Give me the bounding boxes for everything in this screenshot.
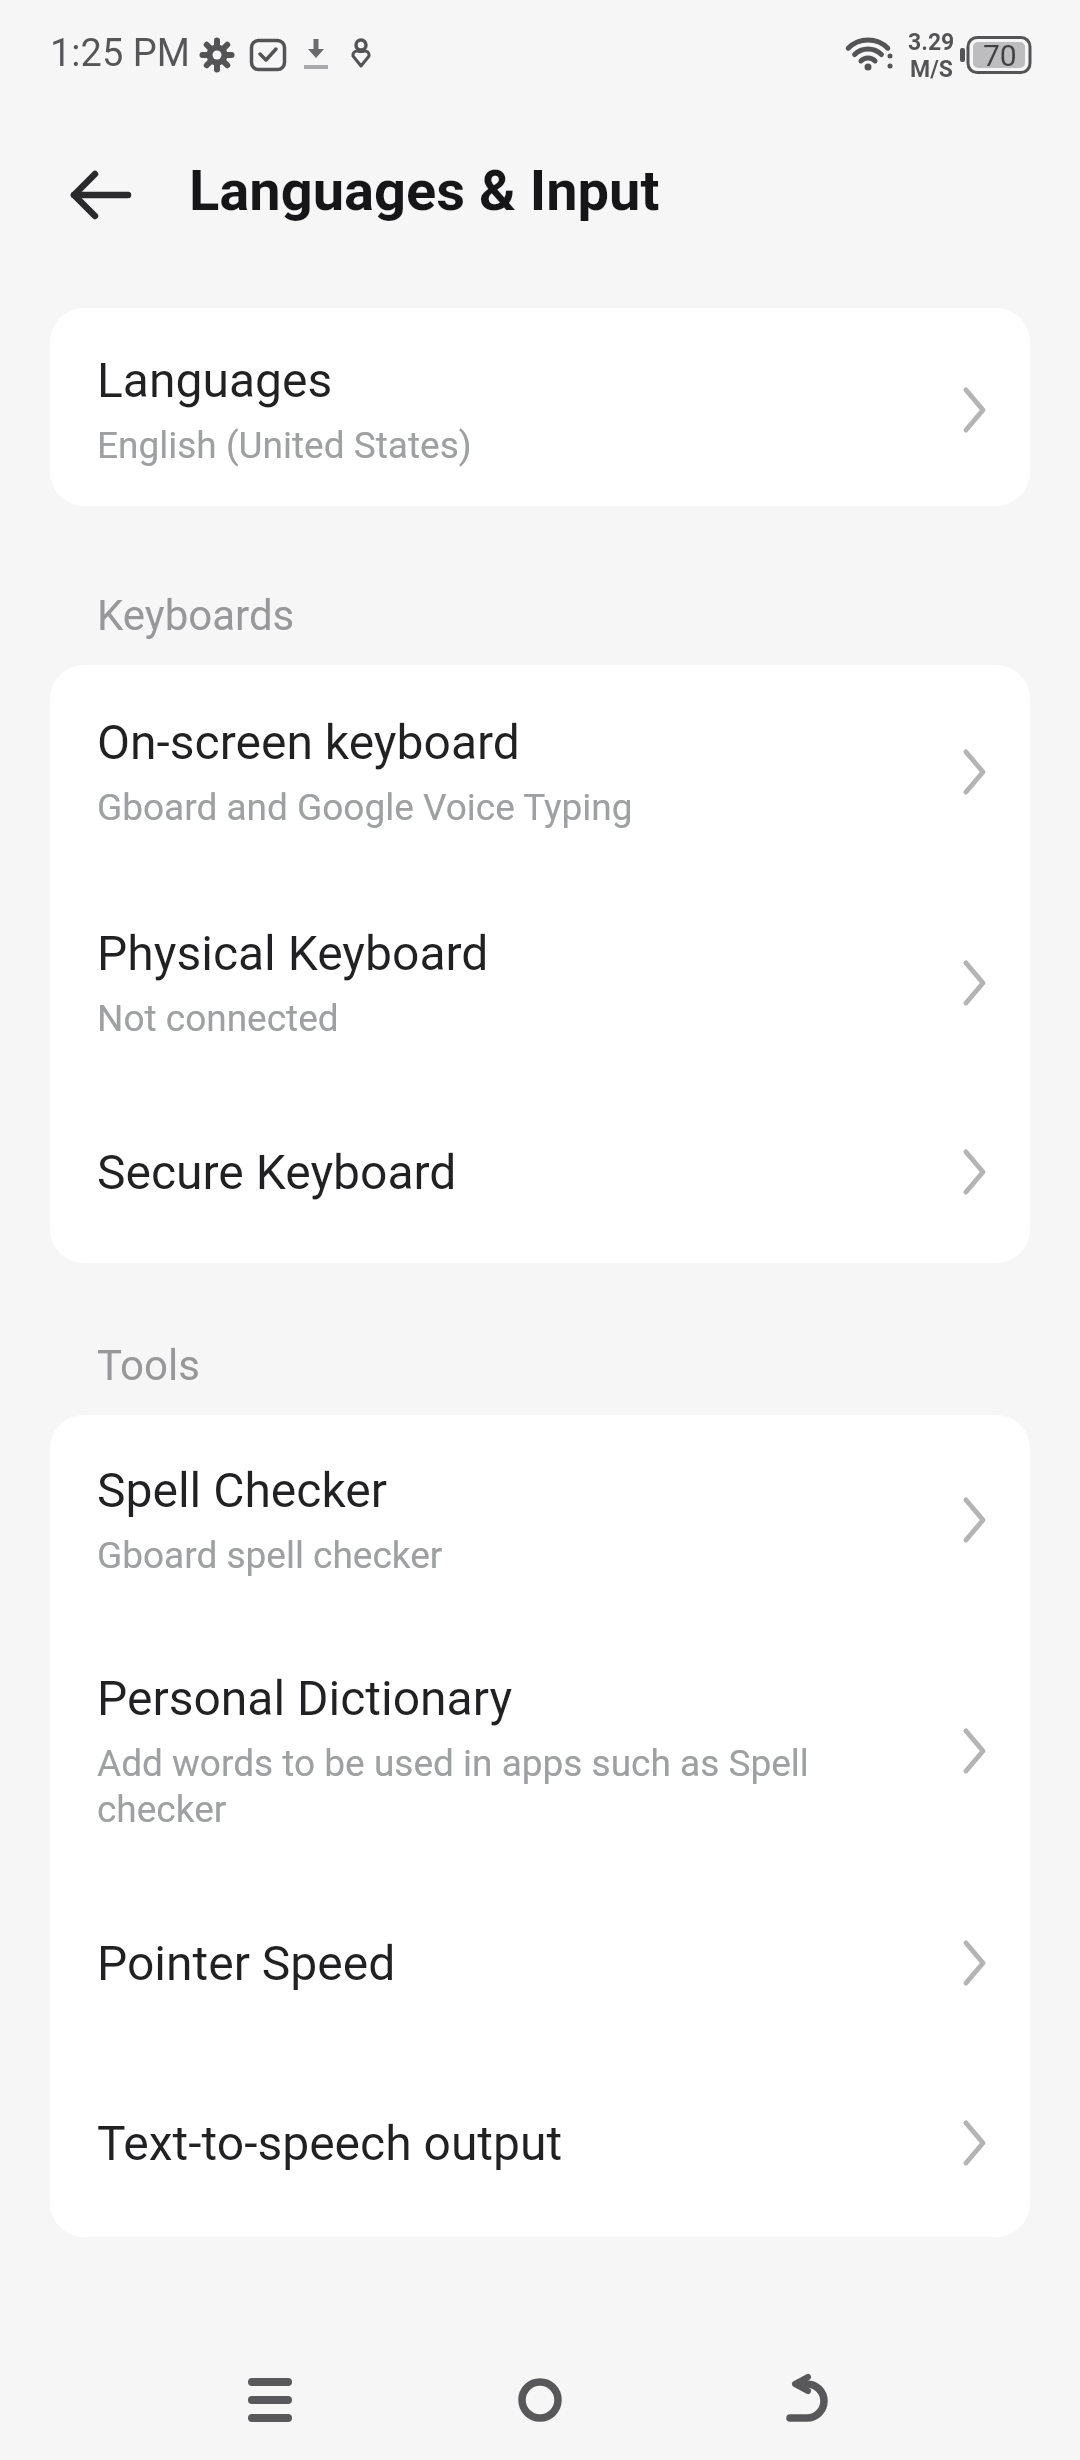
- staticText: Languages: [97, 352, 333, 408]
- button[interactable]: [200, 2339, 340, 2460]
- staticText: Languages & Input: [189, 158, 660, 224]
- staticText: Gboard and Google Voice Typing: [97, 786, 633, 829]
- staticText: 1:25 PM: [50, 31, 190, 76]
- button[interactable]: [740, 2339, 880, 2460]
- staticText: Pointer Speed: [97, 1935, 396, 1991]
- button[interactable]: Personal Dictionary: [50, 1670, 1030, 1831]
- staticText: Physical Keyboard: [97, 925, 489, 981]
- button[interactable]: [64, 168, 138, 222]
- button[interactable]: Spell Checker: [50, 1462, 1030, 1577]
- button[interactable]: Secure Keyboard: [50, 1144, 1030, 1200]
- button[interactable]: Physical Keyboard: [50, 925, 1030, 1040]
- staticText: English (United States): [97, 424, 472, 467]
- staticText: 70: [983, 38, 1017, 73]
- staticText: 3.29: [908, 29, 955, 56]
- staticText: Secure Keyboard: [97, 1144, 457, 1200]
- staticText: Tools: [97, 1341, 200, 1390]
- staticText: Spell Checker: [97, 1462, 387, 1518]
- staticText: Keyboards: [97, 591, 295, 640]
- button[interactable]: [470, 2339, 610, 2460]
- staticText: On-screen keyboard: [97, 714, 520, 770]
- staticText: Gboard spell checker: [97, 1534, 443, 1577]
- button[interactable]: On-screen keyboard: [50, 714, 1030, 829]
- staticText: Personal Dictionary: [97, 1670, 513, 1726]
- button[interactable]: Languages: [50, 352, 1030, 467]
- button[interactable]: Pointer Speed: [50, 1935, 1030, 1991]
- staticText: Text-to-speech output: [97, 2115, 563, 2171]
- staticText: Add words to be used in apps such as Spe…: [97, 1742, 897, 1831]
- staticText: Not connected: [97, 997, 339, 1040]
- button[interactable]: Text-to-speech output: [50, 2115, 1030, 2171]
- staticText: M/S: [910, 56, 953, 83]
